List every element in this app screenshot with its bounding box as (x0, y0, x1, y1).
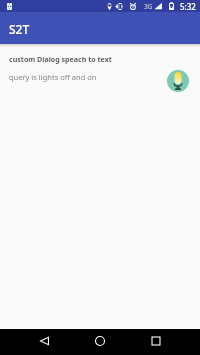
button[interactable]: Start voice input (167, 70, 189, 92)
button[interactable]: Recent apps (140, 329, 171, 355)
button[interactable]: Back (29, 329, 60, 355)
staticText: 3G (144, 2, 153, 11)
button[interactable]: Home (84, 329, 115, 355)
staticText: S2T (9, 21, 30, 37)
staticText: query is lights off and on (9, 72, 97, 82)
staticText: custom Dialog speach to text (9, 54, 112, 64)
staticText: 5:32 (180, 1, 196, 12)
